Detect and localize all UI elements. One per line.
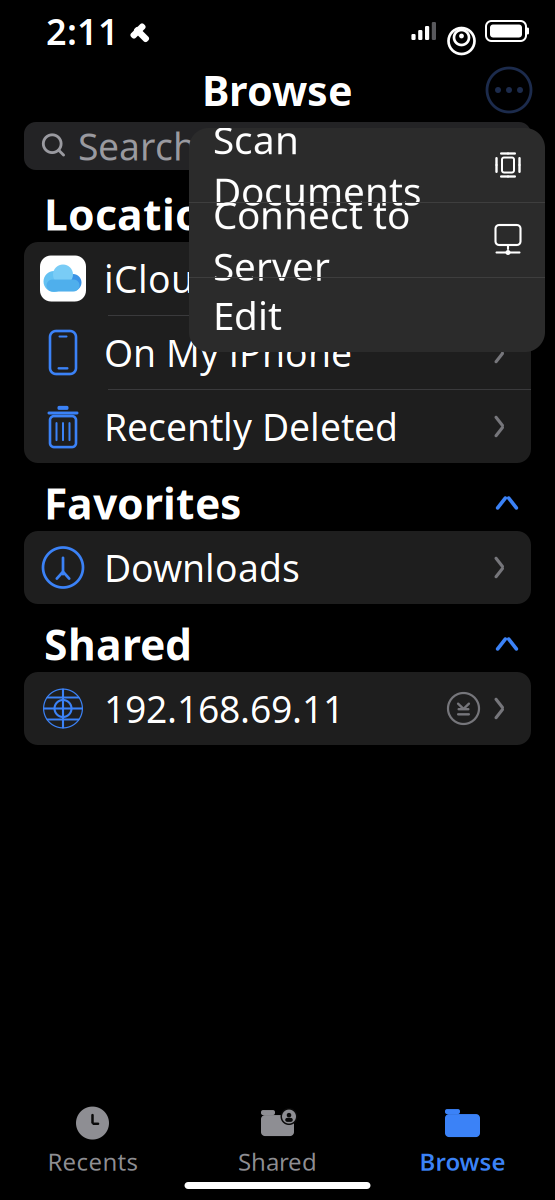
button[interactable]: More [483, 64, 535, 116]
staticText: 2:11 [46, 7, 119, 55]
button[interactable]: 192.168.69.11 [24, 672, 531, 745]
button[interactable]: Search [24, 122, 531, 170]
button[interactable]: Downloads [24, 531, 531, 604]
button[interactable]: On My iPhone [24, 316, 531, 389]
staticText: Search [78, 121, 196, 171]
staticText: On My iPhone [104, 328, 352, 377]
button[interactable]: Recents [0, 1105, 185, 1177]
button[interactable]: Connect to Server [189, 203, 545, 277]
staticText: Recents [47, 1146, 137, 1177]
staticText: Shared [238, 1146, 317, 1177]
staticText: Edit [213, 289, 282, 341]
staticText: Recently Deleted [104, 402, 398, 451]
staticText: Favorites [44, 475, 241, 531]
button[interactable]: Eject 192.168.69.11 [441, 686, 485, 730]
button[interactable]: Shared [185, 1105, 370, 1177]
staticText: Connect to Server [213, 189, 410, 291]
staticText: Browse [419, 1146, 505, 1177]
button[interactable]: Collapse Shared [485, 624, 529, 664]
button[interactable]: Collapse Favorites [485, 483, 529, 523]
button[interactable]: Browse [370, 1105, 555, 1177]
button[interactable]: Edit [189, 278, 545, 352]
button[interactable]: Scan Documents [189, 128, 545, 202]
staticText: Locations [44, 186, 251, 242]
staticText: Scan Documents [213, 114, 422, 216]
staticText: Downloads [104, 543, 300, 592]
staticText: 192.168.69.11 [104, 684, 344, 733]
button[interactable]: Recently Deleted [24, 390, 531, 463]
staticText: Browse [202, 63, 353, 117]
staticText: iCloud Drive [104, 254, 319, 303]
staticText: Shared [44, 616, 192, 672]
button[interactable]: iCloud Drive [24, 242, 531, 315]
